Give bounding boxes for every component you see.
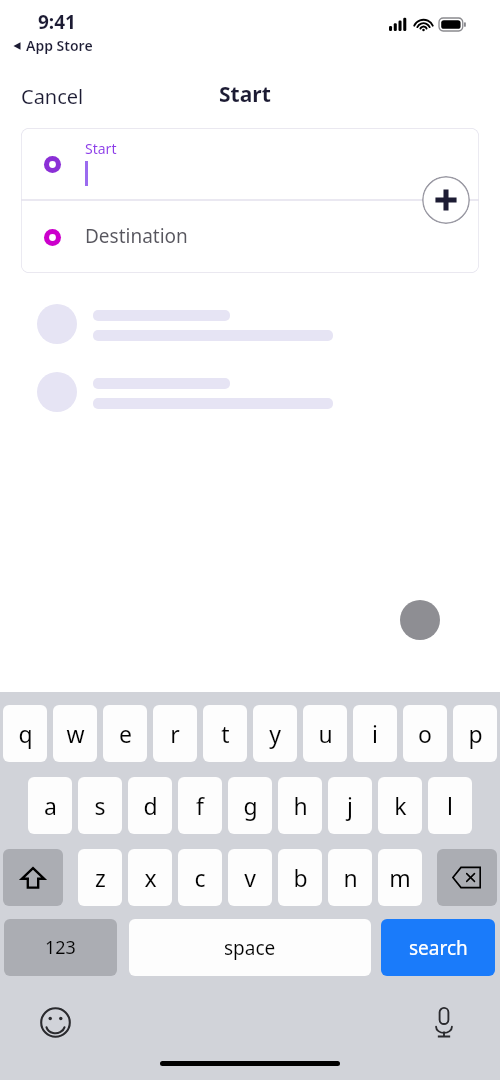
staticText: o (418, 718, 432, 749)
staticText: n (343, 862, 358, 893)
staticText: App Store (26, 36, 93, 55)
button[interactable]: f (178, 777, 222, 834)
staticText: h (293, 790, 308, 821)
button[interactable]: e (103, 705, 147, 762)
staticText: p (468, 718, 483, 749)
staticText: Destination (85, 223, 188, 249)
button[interactable]: Cancel (10, 78, 95, 115)
staticText: z (95, 862, 106, 893)
staticText: l (447, 790, 453, 821)
button[interactable]: o (403, 705, 447, 762)
button[interactable]: b (278, 849, 322, 906)
staticText: f (196, 790, 204, 821)
button[interactable]: x (128, 849, 172, 906)
button[interactable]: Shift (3, 849, 63, 906)
button[interactable]: p (453, 705, 497, 762)
button[interactable]: t (203, 705, 247, 762)
staticText: w (66, 718, 85, 749)
button[interactable]: Dictate (424, 1002, 464, 1042)
button[interactable]: y (253, 705, 297, 762)
button[interactable]: r (153, 705, 197, 762)
staticText: 123 (45, 935, 76, 960)
staticText: Cancel (21, 83, 84, 110)
button[interactable]: Start (21, 128, 479, 200)
button[interactable]: u (303, 705, 347, 762)
button[interactable]: d (128, 777, 172, 834)
staticText: y (269, 718, 281, 749)
button[interactable]: h (278, 777, 322, 834)
button[interactable]: n (328, 849, 372, 906)
staticText: 9:41 (38, 9, 76, 35)
staticText: Start (219, 80, 271, 109)
staticText: m (389, 862, 411, 893)
button[interactable]: z (78, 849, 122, 906)
staticText: d (143, 790, 158, 821)
button[interactable]: Delete (437, 849, 497, 906)
staticText: q (18, 718, 33, 749)
staticText: a (44, 790, 57, 821)
button[interactable]: m (378, 849, 422, 906)
button[interactable]: search (381, 919, 495, 976)
staticText: space (224, 935, 276, 961)
staticText: search (409, 935, 468, 961)
staticText: c (194, 862, 206, 893)
staticText: u (318, 718, 333, 749)
staticText: j (347, 790, 353, 821)
staticText: i (372, 718, 378, 749)
button[interactable]: Destination (21, 201, 479, 272)
staticText: s (94, 790, 106, 821)
staticText: g (243, 790, 258, 821)
button[interactable]: Add stop (422, 176, 470, 224)
button[interactable]: Emoji (35, 1002, 75, 1042)
button[interactable]: q (3, 705, 47, 762)
staticText: e (119, 718, 132, 749)
staticText: t (221, 718, 230, 749)
button[interactable]: j (328, 777, 372, 834)
staticText: k (394, 790, 407, 821)
button[interactable]: v (228, 849, 272, 906)
staticText: b (293, 862, 308, 893)
staticText: v (244, 862, 256, 893)
staticText: x (144, 862, 157, 893)
button[interactable] (0, 304, 500, 354)
button[interactable] (0, 372, 500, 422)
button[interactable]: w (53, 705, 97, 762)
staticText: r (170, 718, 180, 749)
button[interactable]: 123 (4, 919, 117, 976)
button[interactable]: g (228, 777, 272, 834)
button[interactable]: c (178, 849, 222, 906)
button[interactable]: s (78, 777, 122, 834)
button[interactable]: space (129, 919, 371, 976)
staticText: Start (85, 139, 117, 158)
button[interactable]: k (378, 777, 422, 834)
button[interactable]: a (28, 777, 72, 834)
button[interactable]: Location (400, 600, 440, 640)
button[interactable]: i (353, 705, 397, 762)
button[interactable]: l (428, 777, 472, 834)
